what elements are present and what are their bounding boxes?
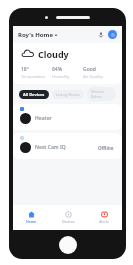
button[interactable]: Account xyxy=(108,30,117,39)
staticText: Alerts xyxy=(99,219,109,224)
button[interactable]: Roy's Home xyxy=(18,31,58,39)
button[interactable]: Heater xyxy=(13,104,122,130)
staticText: Living Room xyxy=(56,92,80,97)
button[interactable]: Cloudy xyxy=(13,43,122,84)
button[interactable]: Alerts xyxy=(86,211,122,224)
staticText: Temperature xyxy=(21,74,46,79)
staticText: Master Bdrm xyxy=(91,89,112,99)
button[interactable]: Voice search xyxy=(97,31,105,39)
button[interactable]: Nest Cam IQ xyxy=(13,133,122,159)
staticText: All Devices xyxy=(23,92,45,97)
staticText: Roy's Home xyxy=(18,31,53,39)
button[interactable]: Master Bdrm xyxy=(87,87,116,101)
staticText: Devices xyxy=(62,219,75,224)
staticText: 64% xyxy=(52,66,63,73)
button[interactable]: All Devices xyxy=(19,90,49,99)
staticText: Nest Cam IQ xyxy=(35,144,66,151)
staticText: Offline xyxy=(98,145,114,151)
button[interactable]: Devices xyxy=(50,211,86,224)
button[interactable]: Home xyxy=(13,211,50,224)
staticText: Heater xyxy=(35,115,52,122)
staticText: Home xyxy=(26,219,37,224)
button[interactable]: Living Room xyxy=(52,90,84,99)
staticText: Humidity xyxy=(52,74,70,79)
staticText: 18° xyxy=(21,66,29,73)
staticText: Air Quality xyxy=(83,74,103,79)
staticText: Good xyxy=(83,66,96,73)
staticText: Cloudy xyxy=(38,48,69,60)
